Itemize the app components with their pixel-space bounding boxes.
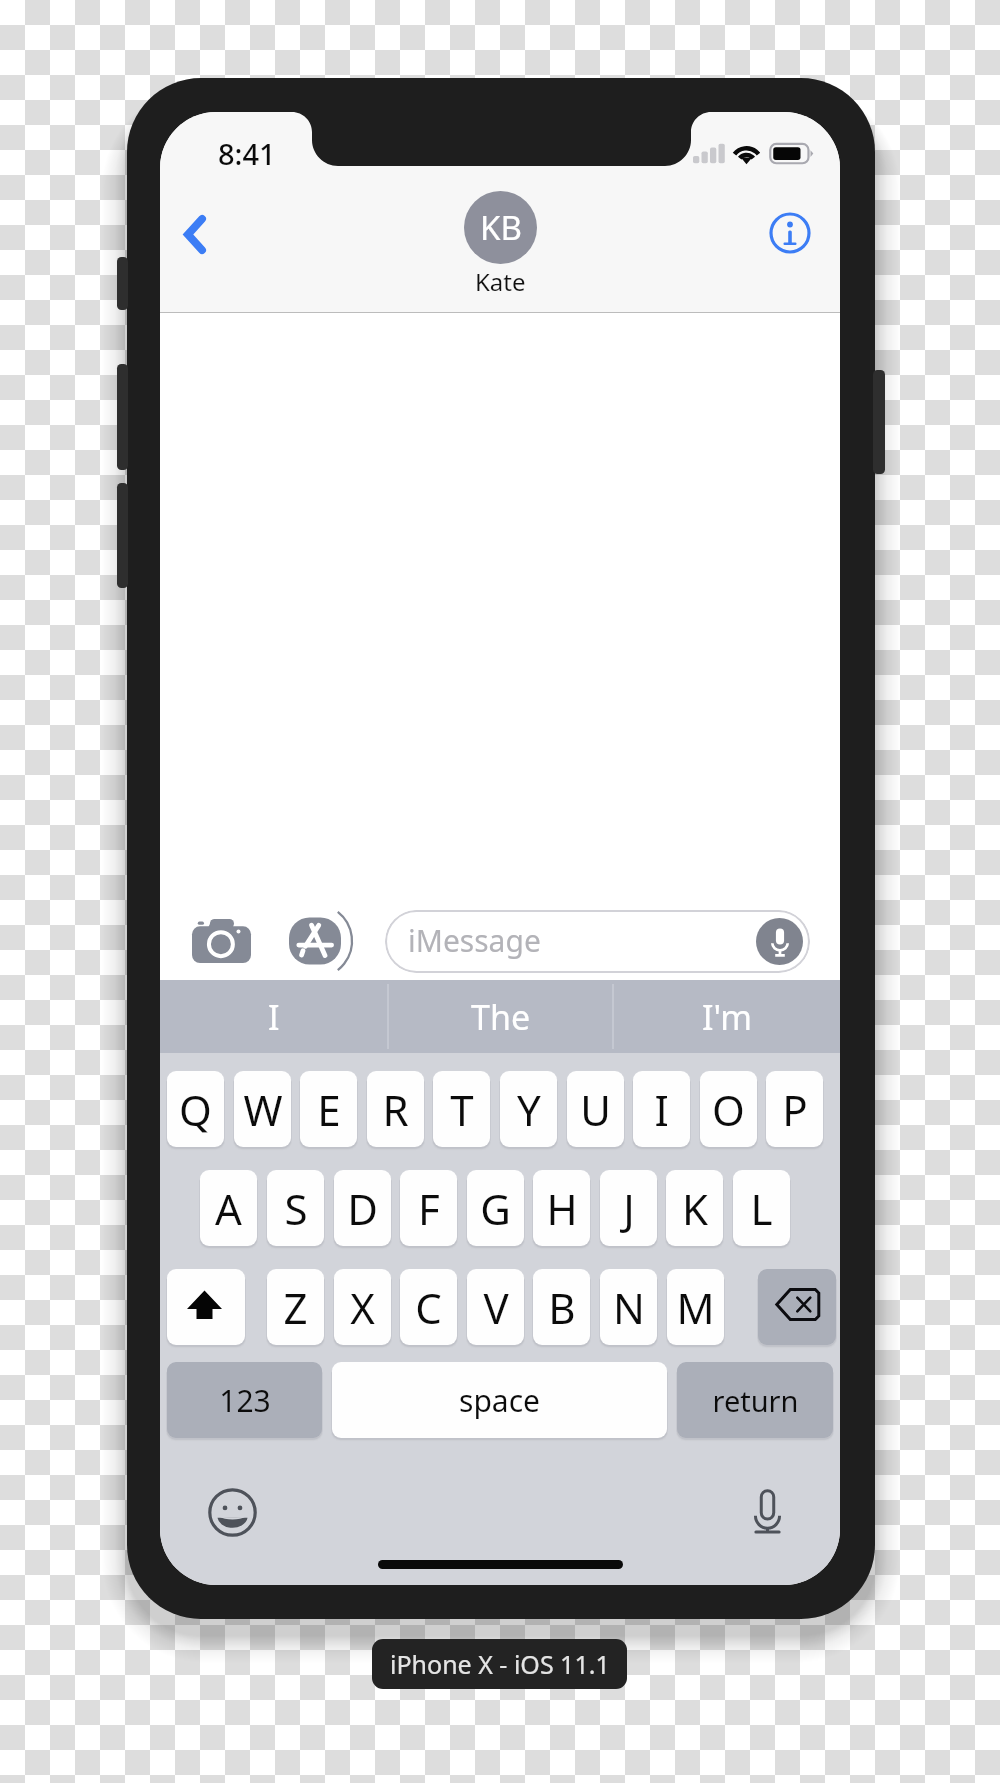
button[interactable]: Details — [761, 204, 819, 262]
button[interactable]: E — [300, 1071, 357, 1153]
staticText: I — [268, 994, 280, 1040]
staticText: T — [450, 1081, 474, 1138]
button[interactable]: W — [234, 1071, 291, 1153]
button[interactable]: U — [567, 1071, 624, 1153]
staticText: iPhone X - iOS 11.1 — [390, 1647, 610, 1681]
button[interactable]: R — [367, 1071, 424, 1153]
staticText: O — [712, 1081, 745, 1138]
staticText: KB — [480, 205, 522, 250]
staticText: 123 — [219, 1380, 271, 1421]
button[interactable]: B — [533, 1269, 590, 1351]
staticText: V — [483, 1279, 509, 1336]
button[interactable]: D — [334, 1170, 391, 1252]
staticText: W — [243, 1081, 283, 1138]
button[interactable]: A — [200, 1170, 257, 1252]
staticText: Y — [517, 1081, 541, 1138]
button[interactable]: iMessage — [385, 910, 810, 973]
staticText: D — [347, 1180, 378, 1237]
button[interactable]: G — [467, 1170, 524, 1252]
staticText: iMessage — [408, 920, 541, 961]
button[interactable]: Q — [167, 1071, 224, 1153]
button[interactable]: Camera — [184, 904, 258, 978]
button[interactable]: Backspace — [758, 1269, 836, 1351]
button[interactable]: 123 — [167, 1362, 322, 1444]
button[interactable]: Y — [500, 1071, 557, 1153]
staticText: M — [676, 1279, 715, 1336]
button[interactable]: The — [388, 980, 613, 1053]
staticText: P — [782, 1081, 808, 1138]
button[interactable]: Dictation — [736, 1481, 798, 1543]
button[interactable]: Dictate — [756, 918, 803, 965]
staticText: B — [548, 1279, 576, 1336]
button[interactable]: L — [733, 1170, 790, 1252]
staticText: I'm — [702, 994, 752, 1040]
button[interactable]: Emoji — [201, 1481, 263, 1543]
staticText: U — [580, 1081, 611, 1138]
button[interactable]: O — [700, 1071, 757, 1153]
staticText: space — [459, 1380, 540, 1421]
staticText: The — [471, 994, 531, 1040]
staticText: S — [284, 1180, 308, 1237]
button[interactable]: N — [600, 1269, 657, 1351]
staticText: C — [415, 1279, 442, 1336]
staticText: H — [546, 1180, 578, 1237]
staticText: R — [382, 1081, 409, 1138]
staticText: return — [712, 1381, 799, 1420]
staticText: G — [480, 1180, 511, 1237]
staticText: N — [613, 1279, 645, 1336]
button[interactable]: space — [332, 1362, 667, 1444]
staticText: Q — [179, 1081, 212, 1138]
button[interactable]: Z — [267, 1269, 324, 1351]
button[interactable]: P — [766, 1071, 823, 1153]
staticText: Z — [283, 1279, 308, 1336]
button[interactable]: X — [334, 1269, 391, 1351]
button[interactable]: Apps — [289, 916, 352, 966]
staticText: Kate — [475, 265, 526, 298]
button[interactable]: M — [667, 1269, 724, 1351]
staticText: E — [317, 1081, 341, 1138]
button[interactable]: I — [633, 1071, 690, 1153]
button[interactable]: I — [160, 980, 388, 1053]
button[interactable]: KB — [160, 191, 840, 298]
staticText: 8:41 — [218, 134, 276, 173]
button[interactable]: return — [677, 1362, 833, 1444]
staticText: X — [350, 1279, 375, 1336]
staticText: I — [654, 1081, 669, 1138]
button[interactable]: H — [533, 1170, 590, 1252]
staticText: F — [418, 1180, 440, 1237]
staticText: J — [623, 1180, 635, 1237]
button[interactable]: I'm — [613, 980, 840, 1053]
button[interactable]: C — [400, 1269, 457, 1351]
button[interactable]: K — [666, 1170, 723, 1252]
button[interactable]: F — [400, 1170, 457, 1252]
button[interactable]: S — [267, 1170, 324, 1252]
button[interactable]: V — [467, 1269, 524, 1351]
staticText: K — [682, 1180, 708, 1237]
staticText: L — [750, 1180, 773, 1237]
button[interactable]: Back — [160, 199, 229, 269]
button[interactable]: Shift — [167, 1269, 245, 1351]
staticText: A — [215, 1180, 242, 1237]
button[interactable]: T — [433, 1071, 490, 1153]
button[interactable]: J — [600, 1170, 657, 1252]
